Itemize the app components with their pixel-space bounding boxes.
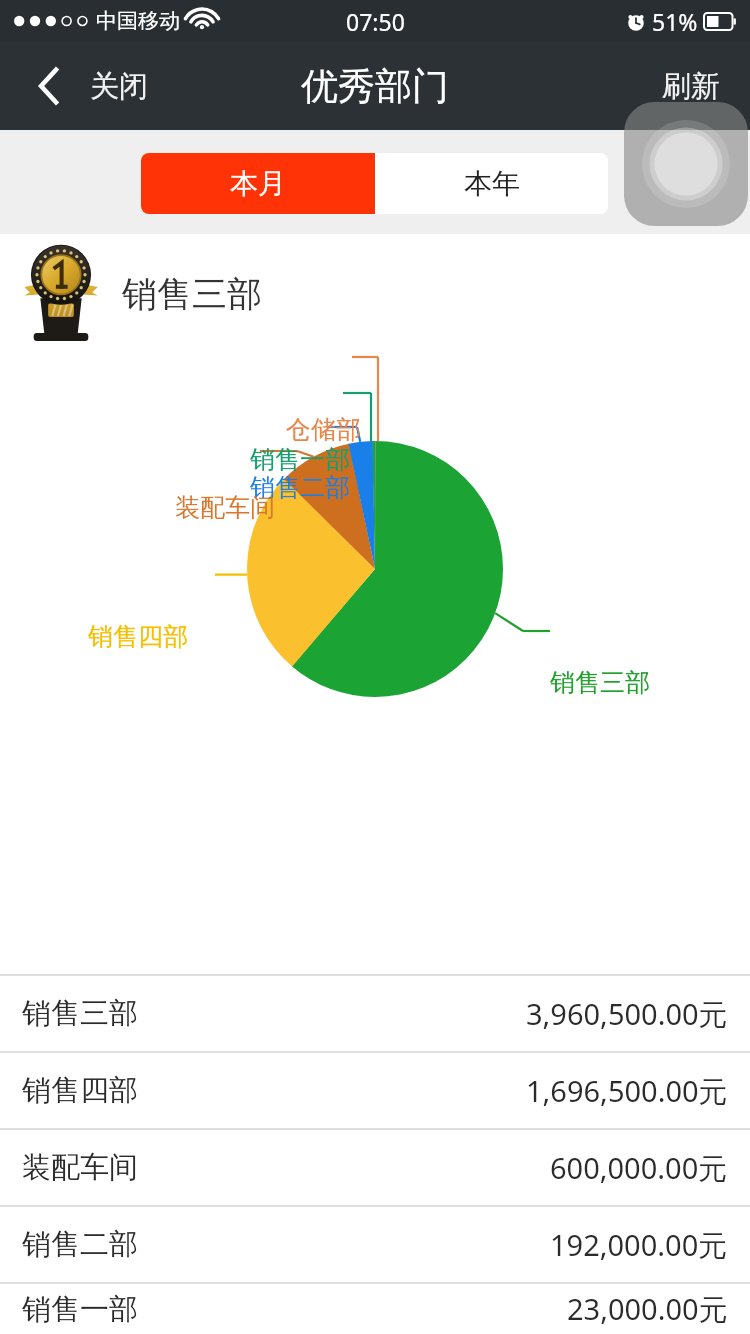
- button[interactable]: 刷新: [638, 50, 750, 123]
- staticText: 装配车间: [22, 1149, 138, 1186]
- staticText: 192,000.00元: [550, 1225, 728, 1265]
- staticText: 刷新: [662, 68, 720, 105]
- button[interactable]: 本月: [141, 153, 375, 214]
- staticText: 销售三部: [22, 995, 138, 1032]
- button[interactable]: 销售一部: [0, 1284, 750, 1334]
- other: 返回: [38, 67, 60, 105]
- button[interactable]: 返回: [0, 51, 164, 121]
- button[interactable]: 本年: [375, 153, 608, 214]
- staticText: 销售三部: [550, 667, 650, 698]
- button[interactable]: 销售四部: [0, 1053, 750, 1128]
- button[interactable]: 销售二部: [0, 1207, 750, 1282]
- staticText: 销售四部: [22, 1072, 138, 1109]
- staticText: 销售一部: [22, 1291, 138, 1328]
- staticText: 51%: [652, 6, 698, 37]
- staticText: 07:50: [346, 6, 405, 37]
- staticText: 销售三部: [122, 272, 262, 316]
- staticText: 23,000.00元: [567, 1289, 728, 1329]
- staticText: 1,696,500.00元: [526, 1071, 728, 1111]
- staticText: 销售一部: [250, 444, 350, 475]
- staticText: 优秀部门: [301, 63, 449, 110]
- staticText: 销售四部: [88, 621, 188, 652]
- staticText: 600,000.00元: [550, 1148, 728, 1188]
- button[interactable]: 销售三部: [0, 234, 750, 354]
- staticText: 销售二部: [22, 1226, 138, 1263]
- staticText: 销售二部: [250, 472, 350, 503]
- staticText: 本月: [230, 166, 286, 201]
- button[interactable]: 销售三部: [0, 976, 750, 1051]
- staticText: 装配车间: [175, 492, 275, 523]
- staticText: 3,960,500.00元: [526, 994, 728, 1034]
- staticText: 中国移动: [96, 8, 180, 34]
- button[interactable]: 辅助触控: [624, 102, 748, 226]
- staticText: 关闭: [90, 68, 148, 105]
- staticText: 仓储部: [286, 414, 361, 445]
- staticText: 本年: [464, 166, 520, 201]
- button[interactable]: 装配车间: [0, 1130, 750, 1205]
